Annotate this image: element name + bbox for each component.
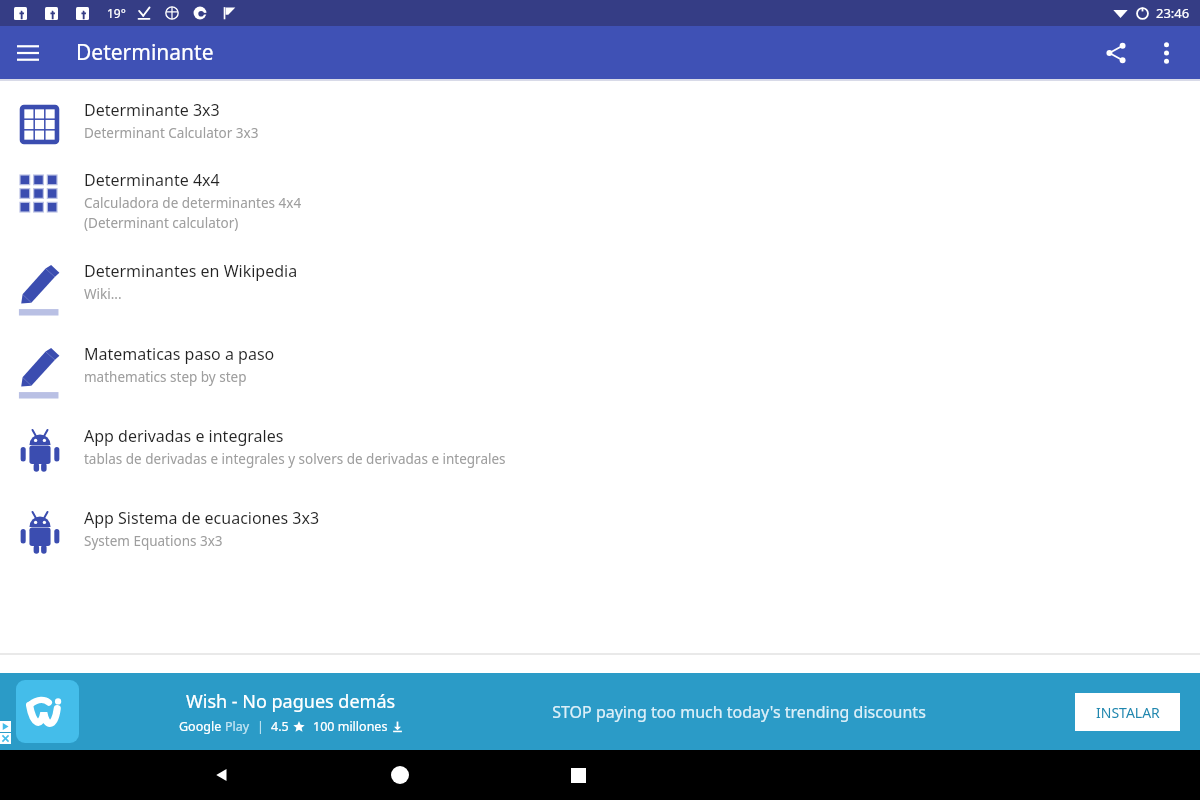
button[interactable]: Determinante 3x3 xyxy=(0,93,1200,163)
button[interactable]: Matematicas paso a paso xyxy=(0,337,1200,419)
staticText: Determinant Calculator 3x3 xyxy=(84,124,259,142)
staticText: Determinante 3x3 xyxy=(84,99,220,121)
staticText: App Sistema de ecuaciones 3x3 xyxy=(84,507,320,529)
staticText: | xyxy=(257,718,264,735)
staticText: 19° xyxy=(107,5,126,21)
staticText: 100 millones xyxy=(313,718,388,735)
staticText: Wiki... xyxy=(84,285,122,303)
button[interactable]: Recent apps xyxy=(554,751,602,799)
staticText: App derivadas e integrales xyxy=(84,425,284,447)
button[interactable]: Share xyxy=(1090,27,1142,79)
staticText: System Equations 3x3 xyxy=(84,532,223,550)
button[interactable]: Back xyxy=(198,751,246,799)
staticText: Matematicas paso a paso xyxy=(84,343,275,365)
staticText: Determinantes en Wikipedia xyxy=(84,260,298,282)
button[interactable]: Home xyxy=(376,751,424,799)
staticText: tablas de derivadas e integrales y solve… xyxy=(84,450,506,468)
staticText: STOP paying too much today's trending di… xyxy=(552,701,926,723)
button[interactable]: Wish - No pagues demás xyxy=(0,673,1200,750)
staticText: 23:46 xyxy=(1156,4,1190,22)
staticText: (Determinant calculator) xyxy=(84,214,239,232)
button[interactable]: More options xyxy=(1142,29,1190,77)
button[interactable]: INSTALAR xyxy=(1075,693,1180,731)
button[interactable]: App derivadas e integrales xyxy=(0,419,1200,501)
button[interactable]: Determinante 4x4 xyxy=(0,163,1200,254)
staticText: Play xyxy=(225,718,250,735)
button[interactable]: Open navigation menu xyxy=(0,26,56,79)
staticText: INSTALAR xyxy=(1096,703,1160,722)
staticText: 4.5 xyxy=(271,718,289,735)
staticText: Google xyxy=(179,718,222,735)
button[interactable]: App Sistema de ecuaciones 3x3 xyxy=(0,501,1200,583)
staticText: Determinante xyxy=(76,38,214,67)
staticText: Determinante 4x4 xyxy=(84,169,220,191)
staticText: Calculadora de determinantes 4x4 xyxy=(84,194,302,212)
staticText: Wish - No pagues demás xyxy=(186,689,396,714)
staticText: mathematics step by step xyxy=(84,368,247,386)
button[interactable]: Determinantes en Wikipedia xyxy=(0,254,1200,337)
